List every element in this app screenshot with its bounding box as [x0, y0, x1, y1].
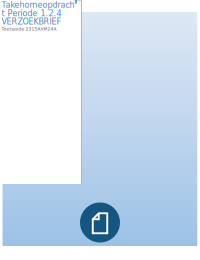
button[interactable]: Open document	[80, 202, 120, 242]
staticText: Toetscode 2315AVM24A	[1, 26, 56, 31]
staticText: Takehomeopdrach t Periode 1.2.4 VERZOEKB…	[1, 0, 74, 26]
